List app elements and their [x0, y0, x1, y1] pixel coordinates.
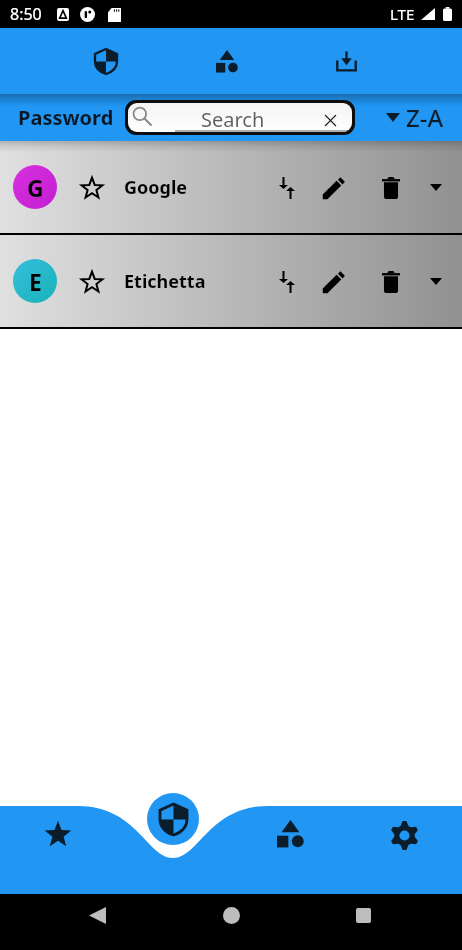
- button[interactable]: Passwords: [83, 38, 129, 84]
- staticText: 8:50: [10, 3, 42, 25]
- button[interactable]: Search: [128, 103, 352, 132]
- button[interactable]: E: [0, 235, 462, 327]
- button[interactable]: Expand: [422, 173, 450, 201]
- staticText: Password: [18, 104, 114, 131]
- button[interactable]: Add password: [147, 793, 199, 845]
- staticText: E: [29, 266, 42, 297]
- button[interactable]: Settings: [387, 818, 421, 852]
- button[interactable]: Copy credentials: [270, 171, 303, 204]
- staticText: Search: [201, 106, 265, 132]
- button[interactable]: Categories: [204, 38, 250, 84]
- staticText: Google: [124, 175, 188, 200]
- button[interactable]: Favorite: [75, 171, 108, 204]
- button[interactable]: Delete: [374, 171, 407, 204]
- button[interactable]: Favorites: [41, 817, 75, 851]
- staticText: Etichetta: [124, 269, 206, 294]
- button[interactable]: Copy credentials: [270, 265, 303, 298]
- staticText: Z-A: [406, 101, 444, 134]
- button[interactable]: Edit: [317, 265, 350, 298]
- button[interactable]: Edit: [317, 171, 350, 204]
- button[interactable]: Z-A: [386, 101, 462, 134]
- button[interactable]: Delete: [374, 265, 407, 298]
- staticText: G: [27, 172, 44, 203]
- button[interactable]: Expand: [422, 267, 450, 295]
- button[interactable]: Categories: [273, 817, 307, 851]
- button[interactable]: Import: [323, 38, 369, 84]
- button[interactable]: Favorite: [75, 265, 108, 298]
- button[interactable]: G: [0, 141, 462, 233]
- staticText: LTE: [390, 4, 415, 24]
